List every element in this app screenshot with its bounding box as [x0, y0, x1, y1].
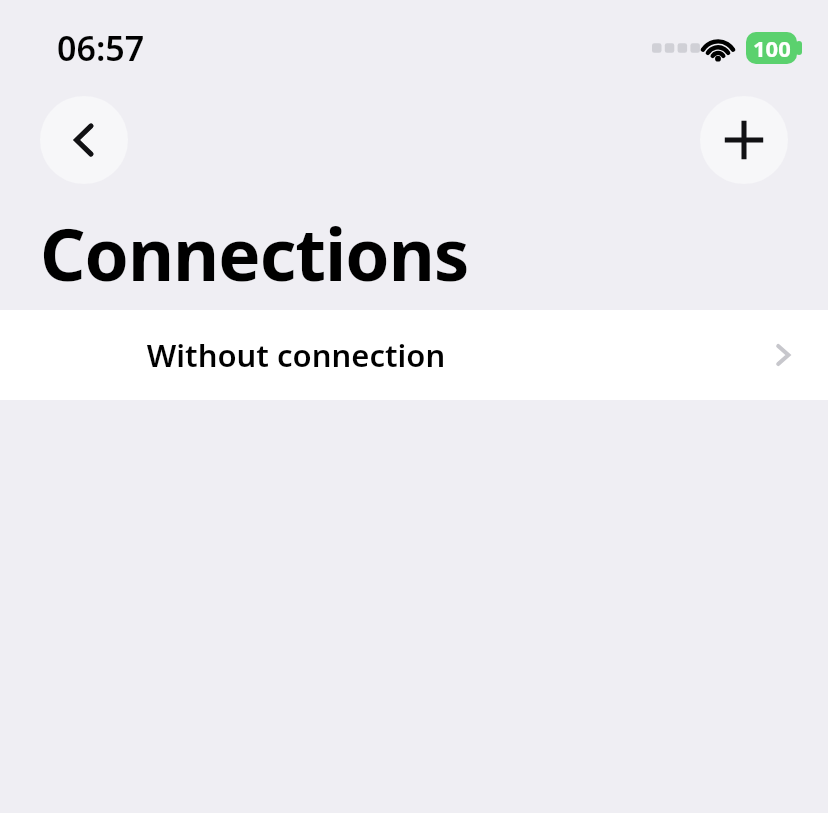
staticText: Without connection [146, 334, 446, 376]
staticText: 06:57 [57, 25, 145, 71]
staticText: Connections [40, 205, 469, 302]
button[interactable]: Add connection [700, 96, 788, 184]
button[interactable]: Without connection [0, 310, 828, 400]
button[interactable]: Back [40, 96, 128, 184]
staticText: 100 [753, 33, 791, 63]
